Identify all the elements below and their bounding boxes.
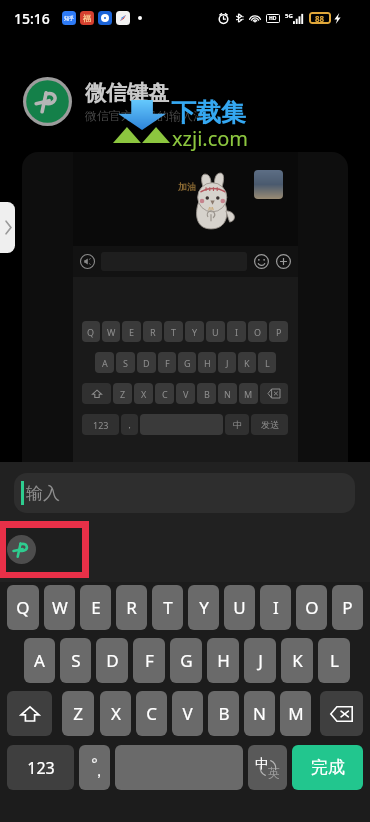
staticText: 英 (268, 765, 280, 780)
staticText: W (52, 596, 68, 619)
button[interactable]: Chinese English toggle (248, 745, 287, 790)
staticText: F (165, 357, 170, 369)
button[interactable]: T (152, 585, 183, 630)
staticText: J (226, 357, 229, 369)
button[interactable]: H (207, 638, 239, 683)
button[interactable]: Expand panel (0, 202, 15, 253)
staticText: M (244, 388, 253, 400)
staticText: 中 (255, 755, 268, 771)
staticText: H (204, 357, 211, 369)
staticText: S (71, 649, 81, 672)
button[interactable]: E (80, 585, 111, 630)
staticText: U (233, 596, 246, 619)
staticText: B (218, 702, 230, 725)
button[interactable]: N (244, 691, 275, 736)
staticText: O (254, 326, 262, 338)
button[interactable]: 输入 (14, 473, 355, 513)
button[interactable]: Shift (7, 691, 52, 736)
button[interactable]: I (260, 585, 291, 630)
staticText: 123 (27, 757, 55, 779)
staticText: HD (269, 15, 277, 22)
staticText: H (217, 649, 230, 672)
staticText: O (305, 596, 319, 619)
staticText: M (288, 702, 304, 725)
staticText: A (102, 357, 108, 369)
button[interactable]: G (170, 638, 202, 683)
button[interactable]: R (116, 585, 147, 630)
staticText: C (146, 702, 157, 725)
staticText: X (111, 702, 121, 725)
staticText: Y (199, 596, 209, 619)
button[interactable]: V (172, 691, 203, 736)
staticText: Z (120, 388, 126, 400)
staticText: ， (92, 763, 106, 781)
staticText: D (106, 649, 119, 672)
staticText: R (126, 596, 137, 619)
button[interactable]: J (244, 638, 276, 683)
button[interactable]: A (24, 638, 55, 683)
staticText: N (253, 702, 266, 725)
staticText: 发送 (261, 419, 279, 430)
button[interactable]: D (96, 638, 128, 683)
staticText: E (129, 326, 135, 338)
staticText: xzji.com (172, 125, 249, 152)
staticText: T (171, 326, 177, 338)
staticText: Y (192, 326, 198, 338)
button[interactable]: Q (7, 585, 39, 630)
staticText: G (184, 357, 191, 369)
staticText: 中 (233, 419, 242, 430)
staticText: J (258, 649, 263, 672)
staticText: Q (87, 326, 95, 338)
button[interactable]: M (280, 691, 311, 736)
staticText: W (107, 326, 116, 338)
button[interactable]: X (100, 691, 131, 736)
button[interactable] (115, 745, 243, 790)
staticText: B (204, 388, 210, 400)
staticText: 知乎 (64, 15, 74, 21)
button[interactable]: Punctuation (79, 745, 110, 790)
button[interactable]: W (44, 585, 75, 630)
staticText: 微信键盘 (85, 80, 169, 106)
staticText: 福 (83, 13, 91, 23)
staticText: Q (16, 596, 30, 619)
button[interactable]: 123 (7, 745, 74, 790)
button[interactable]: K (281, 638, 313, 683)
button[interactable]: Y (188, 585, 219, 630)
staticText: 加油 (178, 181, 196, 192)
button[interactable]: U (224, 585, 255, 630)
staticText: 123 (93, 419, 109, 431)
staticText: 5G (285, 12, 293, 20)
staticText: D (143, 357, 150, 369)
button[interactable]: O (296, 585, 327, 630)
staticText: 输入 (26, 483, 60, 504)
staticText: L (265, 357, 270, 369)
button[interactable]: WeChat keyboard logo (7, 535, 36, 564)
staticText: C (162, 388, 168, 400)
staticText: L (330, 649, 339, 672)
staticText: 15:16 (14, 9, 50, 28)
staticText: N (224, 388, 231, 400)
staticText: Z (73, 702, 83, 725)
staticText: A (34, 649, 45, 672)
staticText: K (292, 649, 303, 672)
staticText: K (244, 357, 250, 369)
button[interactable]: B (208, 691, 239, 736)
button[interactable]: S (60, 638, 91, 683)
staticText: X (141, 388, 147, 400)
button[interactable]: Backspace (320, 691, 363, 736)
staticText: R (150, 326, 156, 338)
staticText: T (163, 596, 173, 619)
staticText: F (145, 649, 154, 672)
staticText: E (91, 596, 101, 619)
staticText: V (183, 388, 189, 400)
button[interactable]: L (318, 638, 350, 683)
staticText: U (212, 326, 219, 338)
staticText: P (276, 326, 282, 338)
button[interactable]: F (133, 638, 165, 683)
button[interactable]: Z (62, 691, 94, 736)
button[interactable]: C (136, 691, 167, 736)
staticText: G (180, 649, 193, 672)
button[interactable]: 完成 (292, 745, 363, 790)
button[interactable]: P (332, 585, 363, 630)
staticText: 下载集 (171, 97, 246, 128)
